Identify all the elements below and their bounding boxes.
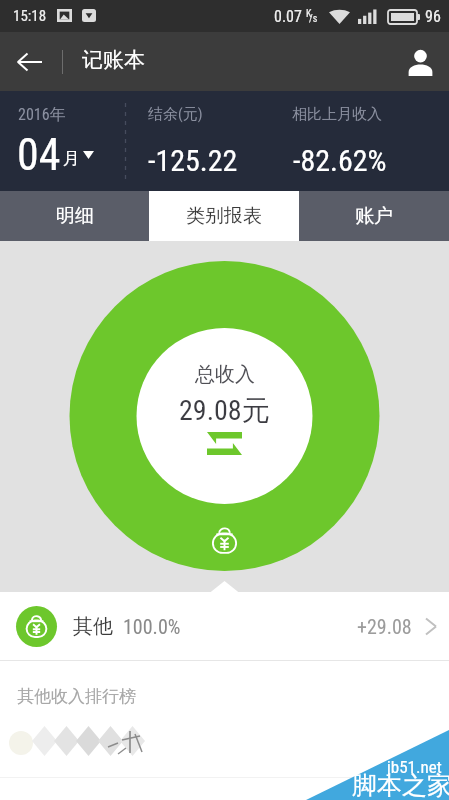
staticText: -82.62% — [293, 143, 387, 178]
staticText: 类别报表 — [186, 204, 262, 228]
staticText: 月 — [63, 148, 80, 169]
staticText: 相比上月收入 — [292, 105, 382, 124]
staticText: 其他收入排行榜 — [17, 686, 136, 707]
button[interactable] — [0, 707, 449, 777]
button[interactable]: 账户 — [299, 191, 449, 241]
button[interactable]: Switch income and expense — [207, 432, 242, 455]
staticText: jb51.net — [387, 757, 442, 777]
staticText: +29.08 — [357, 615, 412, 638]
staticText: 记账本 — [82, 47, 145, 73]
staticText: 其他 — [73, 614, 113, 639]
staticText: 2016年 — [18, 105, 66, 125]
staticText: 结余(元) — [148, 105, 203, 124]
staticText: 15:18 — [13, 7, 47, 25]
staticText: K — [306, 8, 312, 20]
staticText: 29.08元 — [179, 393, 270, 428]
staticText: 0.07 — [274, 7, 302, 26]
button[interactable]: 类别报表 — [149, 191, 299, 241]
staticText: 脚本之家 — [352, 770, 449, 800]
staticText: 96 — [425, 7, 441, 26]
button[interactable]: Back — [0, 32, 58, 91]
button[interactable]: 明细 — [0, 191, 149, 241]
staticText: 总收入 — [195, 362, 255, 387]
staticText: 04 — [17, 129, 61, 181]
staticText: 账户 — [355, 204, 393, 228]
button[interactable]: Account — [391, 32, 449, 91]
button[interactable]: 2016年 — [6, 93, 116, 187]
staticText: 100.0% — [123, 615, 181, 638]
staticText: 明细 — [56, 204, 94, 228]
staticText: -125.22 — [148, 143, 238, 178]
button[interactable]: 其他 — [0, 592, 449, 660]
staticText: /s — [309, 13, 318, 25]
